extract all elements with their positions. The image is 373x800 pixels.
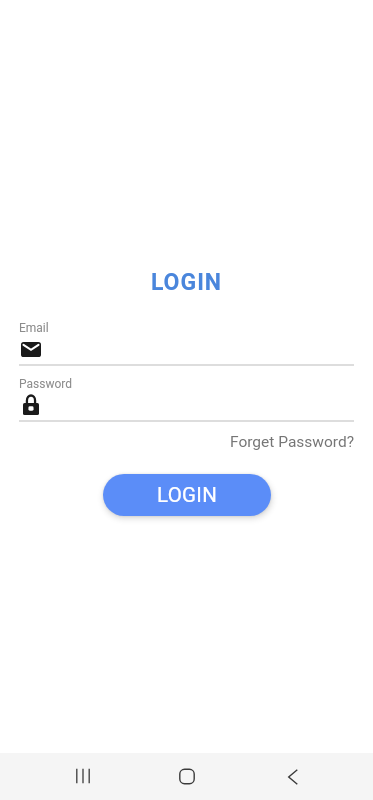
button[interactable]: Email input field <box>19 318 354 366</box>
staticText: LOGIN <box>157 483 218 507</box>
button[interactable]: Home <box>163 753 211 800</box>
staticText: Password <box>19 377 73 391</box>
staticText: Forget Password? <box>230 433 354 451</box>
staticText: Email <box>19 321 49 335</box>
button[interactable]: Forget Password? <box>226 430 354 454</box>
staticText: LOGIN <box>0 269 373 296</box>
button[interactable]: Recent apps <box>59 753 107 800</box>
button[interactable]: Back <box>267 753 315 800</box>
button[interactable]: Password input field <box>19 374 354 422</box>
button[interactable]: LOGIN <box>103 474 271 516</box>
